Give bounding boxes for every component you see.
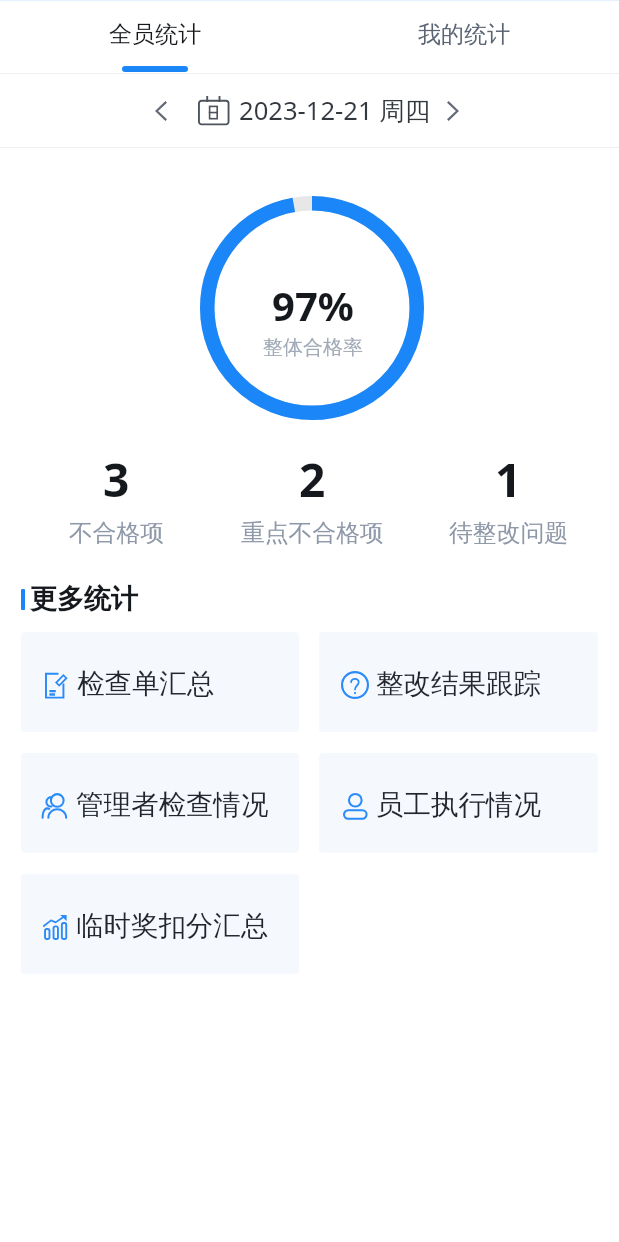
staticText: 重点不合格项 bbox=[241, 518, 384, 548]
staticText: 2 bbox=[299, 448, 326, 511]
staticText: 临时奖扣分汇总 bbox=[76, 909, 269, 944]
button[interactable]: 检查单汇总 bbox=[21, 632, 299, 732]
staticText: 不合格项 bbox=[69, 518, 165, 548]
staticText: 管理者检查情况 bbox=[76, 788, 269, 823]
button[interactable]: 全员统计 bbox=[0, 1, 309, 73]
staticText: 全员统计 bbox=[109, 20, 201, 49]
button[interactable]: 整改结果跟踪 bbox=[319, 632, 598, 732]
staticText: 1 bbox=[495, 448, 522, 511]
button[interactable]: Previous day bbox=[141, 91, 181, 131]
staticText: 员工执行情况 bbox=[376, 788, 541, 823]
button[interactable]: 员工执行情况 bbox=[319, 753, 598, 853]
button[interactable]: 3 bbox=[19, 448, 214, 548]
staticText: 整改结果跟踪 bbox=[376, 667, 541, 702]
staticText: 我的统计 bbox=[418, 20, 510, 49]
button[interactable]: 1 bbox=[410, 448, 606, 548]
staticText: 检查单汇总 bbox=[77, 667, 215, 702]
button[interactable]: Next day bbox=[433, 91, 473, 131]
staticText: 97% bbox=[272, 278, 354, 332]
staticText: 待整改问题 bbox=[449, 518, 568, 548]
staticText: 2023-12-21 周四 bbox=[239, 93, 431, 128]
button[interactable]: 管理者检查情况 bbox=[21, 753, 299, 853]
button[interactable]: 我的统计 bbox=[309, 1, 619, 73]
button[interactable]: 临时奖扣分汇总 bbox=[21, 874, 299, 974]
button[interactable]: 2 bbox=[214, 448, 410, 548]
staticText: 整体合格率 bbox=[263, 335, 363, 360]
staticText: 3 bbox=[103, 448, 130, 511]
staticText: 更多统计 bbox=[30, 582, 138, 616]
